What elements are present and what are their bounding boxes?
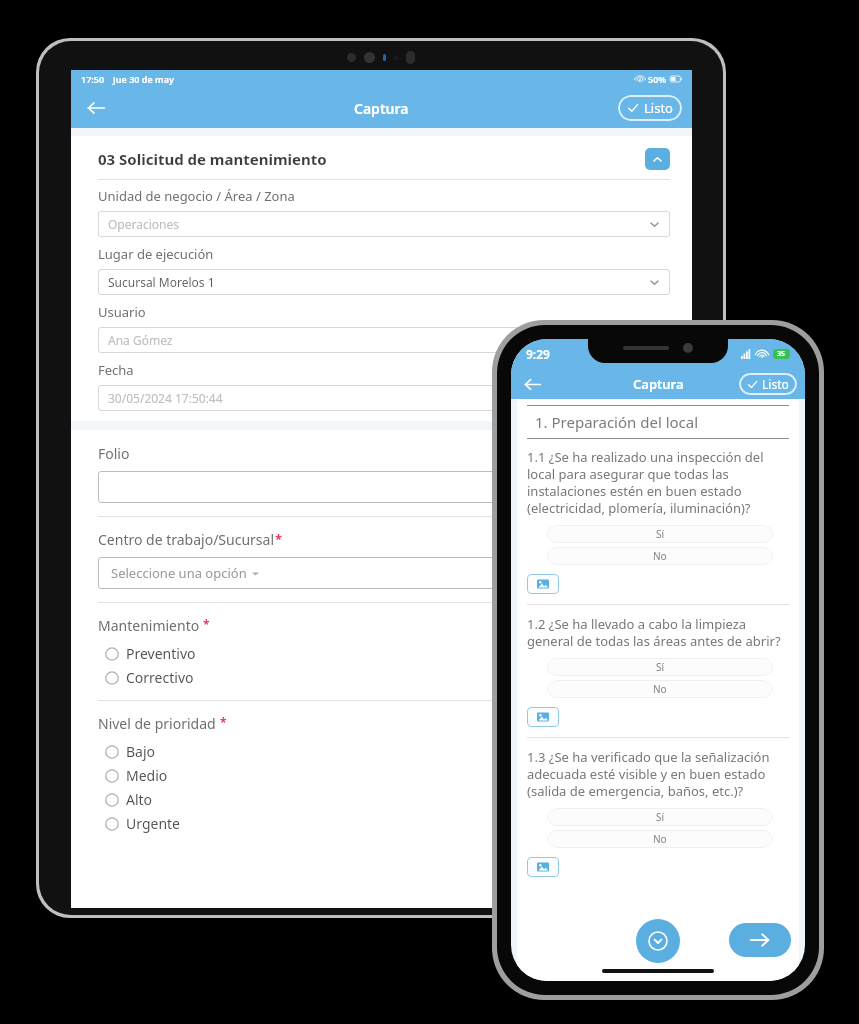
staticText: Sí — [656, 660, 665, 674]
button[interactable]: Add photo — [527, 707, 559, 727]
button[interactable]: Operaciones — [98, 211, 670, 237]
staticText: Urgente — [126, 814, 180, 833]
staticText: Nivel de prioridad — [98, 714, 220, 733]
staticText: 1.2 ¿Se ha llevado a cabo la limpieza ge… — [527, 615, 789, 650]
staticText: Jue 30 de may — [113, 73, 174, 85]
button[interactable]: No — [547, 830, 773, 848]
staticText: * — [203, 616, 210, 632]
button[interactable]: Sucursal Morelos 1 — [98, 269, 670, 295]
staticText: 17:50 — [81, 73, 105, 85]
button[interactable]: Seleccione una opción — [98, 557, 670, 589]
staticText: Listo — [762, 376, 789, 392]
staticText: No — [653, 682, 667, 696]
button[interactable]: Collapse section — [645, 148, 670, 170]
button[interactable]: Sí — [547, 525, 773, 543]
staticText: Sí — [656, 810, 665, 824]
staticText: 9:29 — [526, 346, 550, 362]
button[interactable]: Listo — [618, 95, 682, 121]
staticText: Unidad de negocio / Área / Zona — [98, 187, 295, 205]
staticText: 03 Solicitud de mantenimiento — [98, 149, 645, 169]
staticText: Captura — [354, 99, 409, 118]
staticText: Ana Gómez — [108, 332, 173, 348]
staticText: Listo — [644, 99, 673, 117]
button[interactable]: No — [547, 680, 773, 698]
staticText: Usuario — [98, 303, 146, 321]
button[interactable]: Sí — [547, 658, 773, 676]
button[interactable]: Add photo — [527, 574, 559, 594]
staticText: Folio — [98, 444, 130, 463]
staticText: 50% — [648, 73, 667, 85]
button[interactable]: Scroll down — [636, 919, 680, 963]
button[interactable]: Back — [81, 93, 111, 123]
staticText: Operaciones — [108, 216, 180, 232]
staticText: Captura — [633, 375, 684, 393]
staticText: No — [653, 832, 667, 846]
staticText: No — [653, 549, 667, 563]
staticText: * — [275, 530, 283, 548]
staticText: 1. Preparación del local — [535, 412, 699, 432]
button[interactable]: Medio — [105, 766, 168, 785]
staticText: Seleccione una opción — [111, 564, 247, 582]
staticText: * — [220, 714, 227, 730]
staticText: 35 — [777, 349, 786, 359]
staticText: Alto — [126, 790, 153, 809]
staticText: Sí — [656, 527, 665, 541]
button[interactable]: Sí — [547, 808, 773, 826]
button[interactable]: Correctivo — [105, 668, 194, 687]
button[interactable]: Add photo — [527, 857, 559, 877]
button[interactable]: Bajo — [105, 742, 156, 761]
button[interactable] — [98, 471, 670, 503]
staticText: Fecha — [98, 361, 134, 379]
staticText: 30/05/2024 17:50:44 — [108, 390, 223, 406]
staticText: Bajo — [126, 742, 156, 761]
staticText: Medio — [126, 766, 168, 785]
staticText: 1.3 ¿Se ha verificado que la señalizació… — [527, 748, 789, 800]
staticText: Preventivo — [126, 644, 196, 663]
button[interactable]: 30/05/2024 17:50:44 — [98, 385, 670, 411]
button[interactable]: Back — [519, 371, 545, 397]
staticText: Lugar de ejecución — [98, 245, 214, 263]
staticText: Sucursal Morelos 1 — [108, 274, 215, 290]
button[interactable]: Urgente — [105, 814, 180, 833]
staticText: Correctivo — [126, 668, 194, 687]
staticText: Mantenimiento — [98, 616, 203, 635]
button[interactable]: Alto — [105, 790, 153, 809]
button[interactable]: Next — [729, 923, 791, 957]
button[interactable]: Listo — [739, 373, 797, 395]
staticText: Centro de trabajo/Sucursal — [98, 530, 275, 549]
button[interactable]: Preventivo — [105, 644, 196, 663]
button[interactable]: Ana Gómez — [98, 327, 670, 353]
button[interactable]: No — [547, 547, 773, 565]
staticText: 1.1 ¿Se ha realizado una inspección del … — [527, 448, 789, 517]
